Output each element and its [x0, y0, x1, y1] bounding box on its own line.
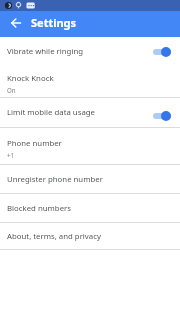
staticText: +1	[7, 151, 15, 159]
button[interactable]: Limit mobile data usage	[0, 98, 180, 127]
button[interactable]: Knock Knock	[0, 65, 180, 97]
button[interactable]: Vibrate while ringing	[0, 37, 180, 65]
staticText: Blocked numbers	[7, 203, 71, 214]
button[interactable]: Phone number	[0, 128, 180, 164]
staticText: Unregister phone number	[7, 174, 103, 185]
button[interactable]: About, terms, and privacy	[0, 223, 180, 249]
staticText: Knock Knock	[7, 73, 54, 84]
staticText: Settings	[31, 15, 77, 30]
button[interactable]: Blocked numbers	[0, 194, 180, 222]
staticText: About, terms, and privacy	[7, 231, 101, 242]
button[interactable]	[9, 17, 23, 31]
staticText: Limit mobile data usage	[7, 107, 95, 118]
staticText: Phone number	[7, 138, 62, 149]
button[interactable]: Unregister phone number	[0, 165, 180, 193]
staticText: On	[7, 86, 16, 94]
staticText: Vibrate while ringing	[7, 46, 84, 57]
